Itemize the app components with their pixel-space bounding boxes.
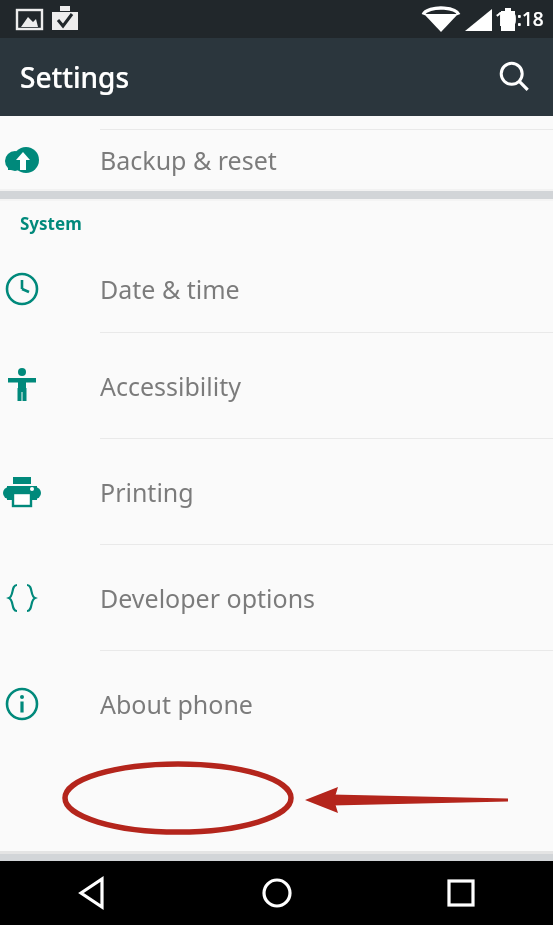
staticText: Printing [100,475,194,509]
staticText: Settings [20,58,130,96]
staticText: Date & time [100,272,240,306]
staticText: Backup & reset [100,143,277,177]
button[interactable]: Date & time [0,245,553,332]
button[interactable]: Back [0,861,185,925]
staticText: About phone [100,687,253,721]
button[interactable]: Search [491,54,537,100]
button[interactable]: Recents [369,861,553,925]
button[interactable]: Printing [0,439,553,544]
staticText: Developer options [100,581,316,615]
staticText: System [20,212,82,235]
button[interactable]: Backup & reset [0,130,553,189]
staticText: Accessibility [100,369,241,403]
button[interactable]: Accessibility [0,333,553,438]
staticText: 10:18 [495,6,544,32]
button[interactable]: About phone [0,651,553,756]
button[interactable]: Home [185,861,369,925]
button[interactable]: Developer options [0,545,553,650]
